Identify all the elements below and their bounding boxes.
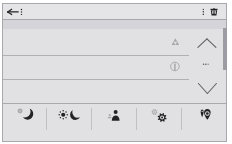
button[interactable]: Delete [208, 4, 222, 19]
button[interactable]: More [188, 56, 224, 72]
button[interactable]: Scroll up [188, 32, 224, 53]
button[interactable] [3, 80, 226, 103]
button[interactable]: Night mode [3, 104, 46, 141]
button[interactable]: Scroll down [188, 78, 224, 99]
button[interactable] [3, 29, 226, 55]
button[interactable] [3, 56, 226, 79]
button[interactable]: Accounts [92, 104, 136, 141]
button[interactable]: Back [4, 4, 21, 19]
button[interactable]: Locations [182, 104, 226, 141]
button[interactable]: Settings [137, 104, 181, 141]
button[interactable]: Overflow menu [199, 4, 208, 19]
button[interactable]: More options [18, 4, 27, 19]
button[interactable]: Light and dark theme [47, 104, 91, 141]
